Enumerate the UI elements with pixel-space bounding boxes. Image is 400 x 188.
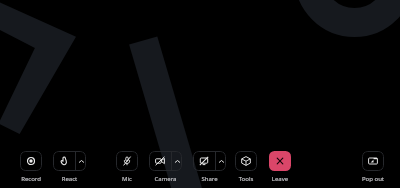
button[interactable]: React	[53, 151, 75, 171]
button[interactable]: Mic	[116, 151, 138, 171]
button[interactable]: Camera	[149, 151, 171, 171]
staticText: Tools	[211, 175, 281, 188]
staticText: Pop out	[338, 175, 400, 188]
button[interactable]: Pop out	[362, 151, 384, 171]
button[interactable]: React options	[76, 151, 86, 171]
staticText: Mic	[92, 175, 162, 188]
button[interactable]: Share options	[216, 151, 226, 171]
staticText: Camera	[125, 175, 206, 188]
button[interactable]: Leave	[269, 151, 291, 171]
staticText: Share	[169, 175, 250, 188]
button[interactable]: Camera options	[172, 151, 182, 171]
staticText: Record	[0, 175, 66, 188]
button[interactable]: Share	[193, 151, 215, 171]
button[interactable]: Tools	[235, 151, 257, 171]
staticText: Leave	[245, 175, 315, 188]
staticText: React	[29, 175, 110, 188]
button[interactable]: Record	[20, 151, 42, 171]
